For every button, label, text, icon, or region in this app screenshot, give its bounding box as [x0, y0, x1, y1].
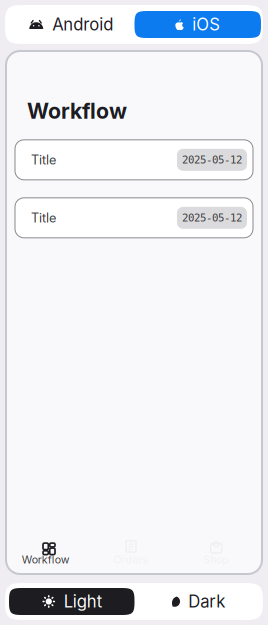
- button[interactable]: Dark: [134, 588, 260, 615]
- staticText: Workflow: [22, 553, 70, 566]
- staticText: Dark: [188, 591, 225, 612]
- staticText: Workflow: [27, 98, 127, 124]
- button[interactable]: Title: [15, 140, 253, 180]
- staticText: 2025-05-12: [182, 154, 242, 166]
- staticText: 2025-05-12: [182, 212, 242, 224]
- button[interactable]: iOS: [134, 11, 261, 38]
- staticText: Title: [31, 152, 56, 167]
- staticText: Android: [52, 14, 113, 35]
- staticText: Light: [64, 591, 102, 612]
- button[interactable]: Workflow: [6, 541, 91, 566]
- button[interactable]: Android: [8, 11, 134, 38]
- staticText: iOS: [192, 14, 220, 35]
- staticText: Title: [31, 210, 56, 225]
- button[interactable]: Shop: [177, 541, 262, 566]
- button[interactable]: Light: [9, 588, 134, 615]
- button[interactable]: Title: [15, 198, 253, 238]
